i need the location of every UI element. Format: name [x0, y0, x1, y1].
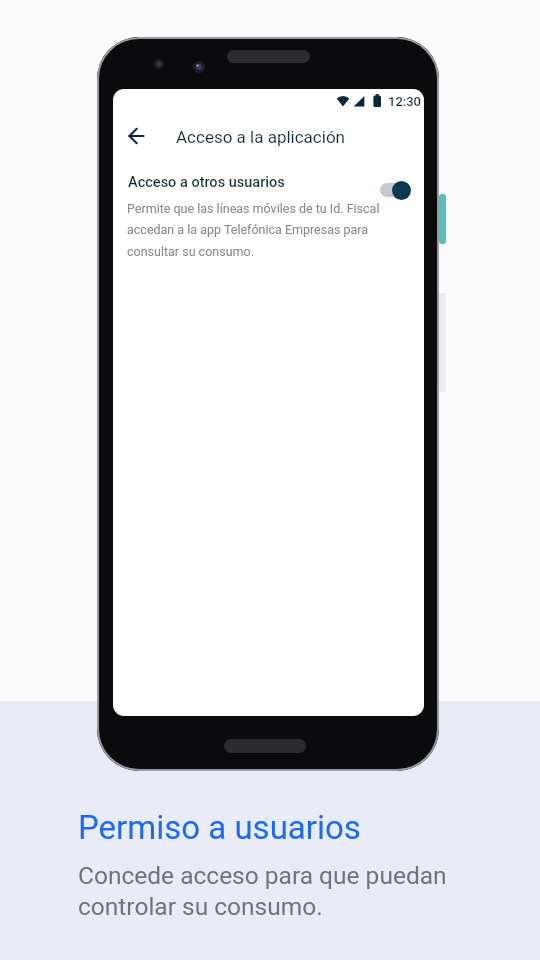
staticText: Acceso a otros usuarios: [128, 174, 285, 191]
staticText: 12:30: [388, 94, 422, 109]
button[interactable]: [380, 183, 407, 197]
staticText: Permite que las líneas móviles de tu Id.…: [127, 201, 380, 259]
staticText: Permiso a usuarios: [78, 808, 361, 847]
staticText: Acceso a la aplicación: [176, 127, 345, 147]
staticText: Concede acceso para que puedan controlar…: [78, 861, 447, 921]
button[interactable]: [120, 119, 154, 153]
